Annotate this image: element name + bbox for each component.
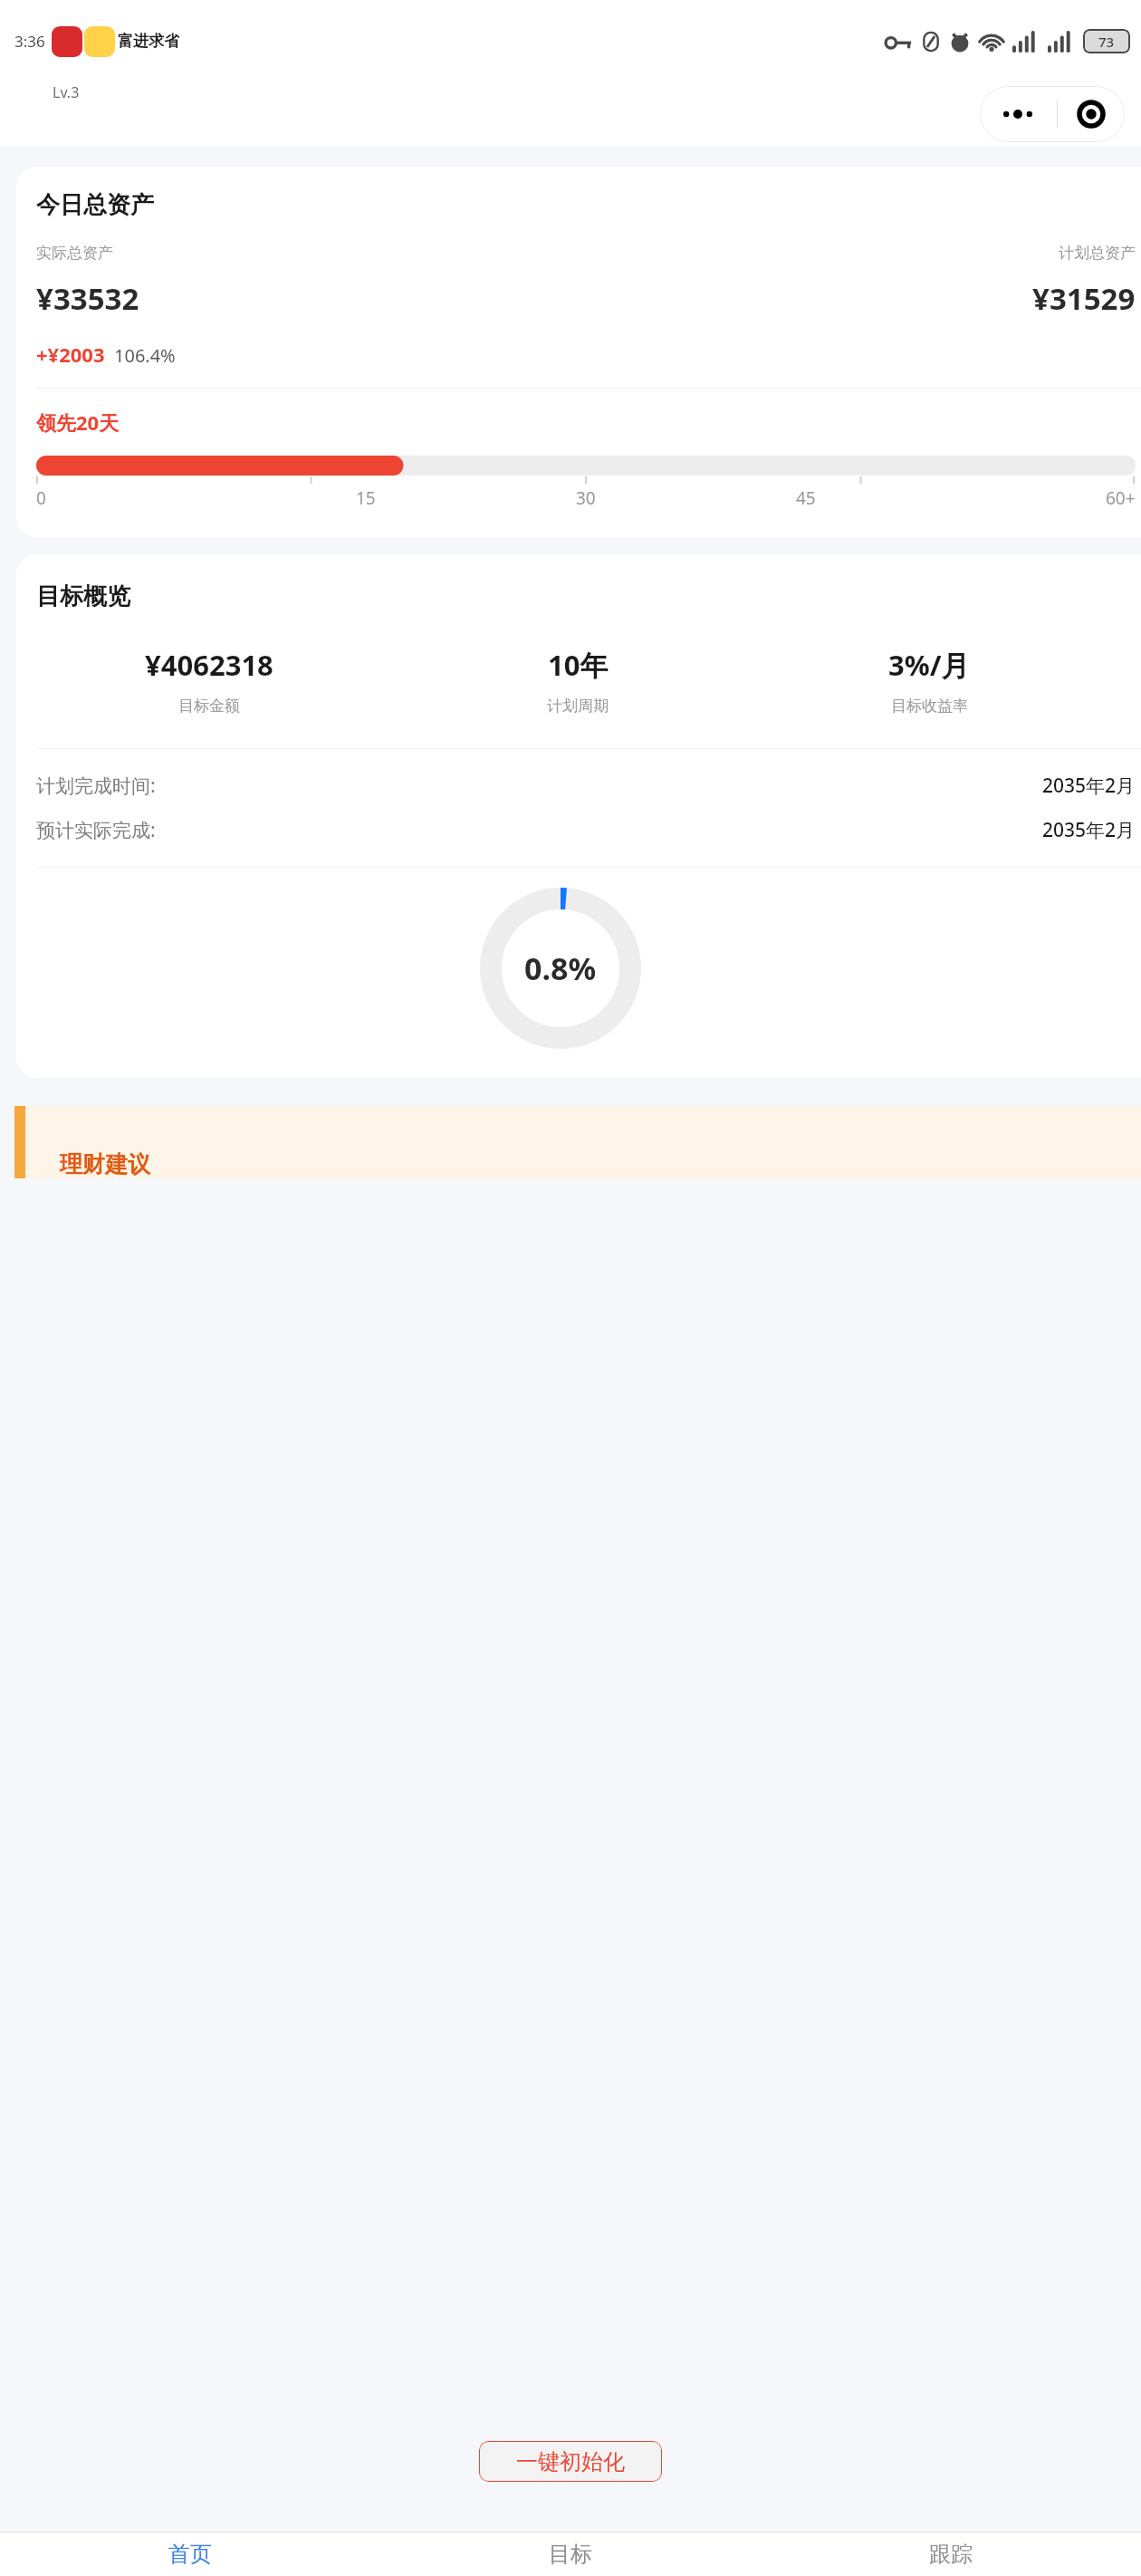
staticText: 60+ [1106, 486, 1136, 510]
staticText: +¥2003 [36, 341, 105, 368]
staticText: 2035年2月 [1042, 817, 1136, 843]
other: VPN key [881, 30, 914, 53]
button[interactable]: 理财建议 [14, 1106, 1141, 1178]
staticText: 一键初始化 [516, 2448, 625, 2475]
staticText: 首页 [168, 2541, 212, 2568]
staticText: 目标概览 [36, 582, 130, 611]
staticText: ¥31529 [1032, 278, 1136, 319]
staticText: 领先20天 [36, 409, 120, 436]
staticText: ¥4062318 [145, 646, 273, 684]
staticText: 73 [1098, 33, 1115, 51]
staticText: 10年 [548, 646, 609, 684]
button[interactable]: 目标 [380, 2533, 761, 2576]
button[interactable]: 一键初始化 [479, 2441, 662, 2482]
button[interactable]: 首页 [0, 2533, 380, 2576]
staticText: 目标 [549, 2541, 592, 2568]
staticText: 预计实际完成: [36, 817, 156, 843]
button[interactable]: 跟踪 [761, 2533, 1141, 2576]
staticText: 15 [356, 486, 376, 510]
staticText: 富进求省 [118, 32, 179, 51]
staticText: 45 [796, 486, 816, 510]
staticText: 计划总资产 [1059, 244, 1136, 263]
staticText: 3%/月 [888, 646, 970, 684]
staticText: 计划周期 [547, 697, 609, 716]
staticText: 0.8% [524, 947, 597, 989]
staticText: 跟踪 [929, 2541, 973, 2568]
staticText: 理财建议 [60, 1150, 150, 1178]
staticText: ¥33532 [36, 278, 139, 319]
staticText: 目标金额 [178, 697, 240, 716]
staticText: 30 [576, 486, 596, 510]
staticText: 计划完成时间: [36, 773, 156, 799]
staticText: 106.4% [114, 343, 176, 368]
staticText: Lv.3 [53, 82, 80, 102]
staticText: 今日总资产 [36, 190, 154, 220]
staticText: 3:36 [14, 31, 45, 52]
staticText: 2035年2月 [1042, 773, 1136, 799]
button[interactable]: More options [980, 86, 1125, 142]
staticText: 实际总资产 [36, 244, 113, 263]
staticText: 目标收益率 [891, 697, 968, 716]
staticText: 0 [36, 486, 46, 510]
